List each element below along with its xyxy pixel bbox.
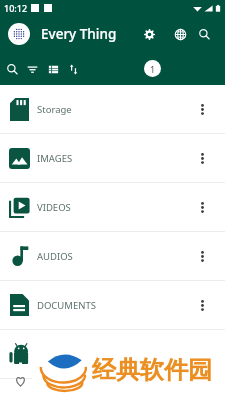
- button[interactable]: Search files: [2, 59, 22, 79]
- button[interactable]: More options for AUDIOS: [191, 245, 213, 267]
- button[interactable]: Grid view: [43, 59, 63, 79]
- button[interactable]: Favorites: [0, 373, 225, 393]
- button[interactable]: More options for VIDEOS: [191, 196, 213, 218]
- staticText: 10:12: [4, 2, 28, 14]
- button[interactable]: AUDIOS: [0, 232, 225, 281]
- button[interactable]: DOCUMENTS: [0, 281, 225, 330]
- button[interactable]: VIDEOS: [0, 183, 225, 232]
- button[interactable]: IMAGES: [0, 134, 225, 183]
- button[interactable]: Sort: [63, 59, 83, 79]
- button[interactable]: Navigation menu: [8, 23, 30, 45]
- button[interactable]: Search: [194, 24, 214, 44]
- button[interactable]: Language: [170, 24, 190, 44]
- button[interactable]: Selected count: [144, 60, 161, 77]
- button[interactable]: More options for DOCUMENTS: [191, 294, 213, 316]
- button[interactable]: Settings: [139, 24, 159, 44]
- staticText: Every Thing: [41, 25, 117, 43]
- staticText: 经典软件园: [92, 355, 212, 385]
- staticText: VIDEOS: [37, 201, 71, 214]
- button[interactable]: More options for APPS: [191, 343, 213, 365]
- staticText: IMAGES: [37, 152, 73, 165]
- staticText: APPS: [37, 348, 60, 361]
- staticText: 1: [150, 63, 156, 75]
- staticText: DOCUMENTS: [37, 299, 96, 312]
- staticText: AUDIOS: [37, 250, 73, 263]
- button[interactable]: Storage: [0, 85, 225, 134]
- staticText: Storage: [37, 103, 72, 116]
- button[interactable]: More options for Storage: [191, 98, 213, 120]
- button[interactable]: More options for IMAGES: [191, 147, 213, 169]
- button[interactable]: APPS: [0, 330, 225, 379]
- button[interactable]: Filter: [22, 59, 42, 79]
